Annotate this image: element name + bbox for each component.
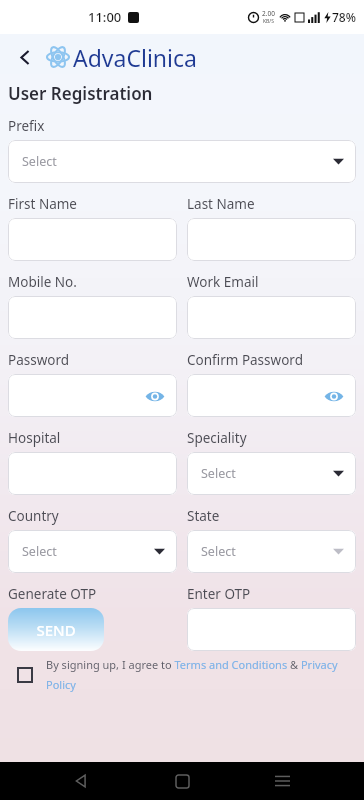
button[interactable] — [8, 452, 177, 495]
staticText: State — [187, 507, 220, 525]
staticText: Select — [22, 153, 57, 170]
staticText: Password — [8, 351, 70, 369]
staticText: 11:00 — [88, 8, 122, 26]
button[interactable]: Select — [8, 140, 356, 183]
staticText: Country — [8, 507, 59, 525]
staticText: Confirm Password — [187, 351, 303, 369]
button[interactable]: Select — [187, 452, 356, 495]
button[interactable] — [187, 218, 356, 261]
staticText: Enter OTP — [187, 585, 251, 603]
button[interactable]: Show password — [8, 374, 177, 417]
staticText: Last Name — [187, 195, 255, 213]
staticText: User Registration — [8, 82, 153, 105]
button[interactable] — [8, 218, 177, 261]
button[interactable]: Show password — [187, 374, 356, 417]
button[interactable]: Show password — [322, 384, 346, 408]
staticText: Mobile No. — [8, 273, 77, 291]
staticText: 78% — [332, 9, 356, 25]
staticText: Select — [201, 465, 236, 482]
button[interactable]: SEND — [8, 608, 104, 651]
staticText: SEND — [36, 620, 76, 640]
button[interactable]: Show password — [143, 384, 167, 408]
button[interactable] — [8, 296, 177, 339]
button[interactable]: Select — [187, 530, 356, 573]
staticText: Generate OTP — [8, 585, 97, 603]
staticText: AdvaClinica — [73, 42, 197, 73]
staticText: Speciality — [187, 429, 247, 447]
button[interactable]: Back — [64, 763, 100, 799]
staticText: First Name — [8, 195, 77, 213]
staticText: KB/S — [263, 18, 274, 25]
button[interactable]: Home — [164, 763, 200, 799]
button[interactable]: Back — [8, 40, 42, 74]
button[interactable]: By signing up, I agree to Terms and Cond… — [46, 657, 350, 692]
button[interactable]: Recent apps — [264, 763, 300, 799]
button[interactable]: Select — [8, 530, 177, 573]
staticText: Prefix — [8, 117, 45, 135]
staticText: 2.00 — [262, 9, 275, 18]
button[interactable]: Agree to terms — [12, 662, 38, 688]
staticText: Hospital — [8, 429, 61, 447]
button[interactable] — [187, 608, 356, 651]
staticText: Work Email — [187, 273, 259, 291]
staticText: Select — [201, 543, 236, 560]
staticText: Select — [22, 543, 57, 560]
button[interactable] — [187, 296, 356, 339]
